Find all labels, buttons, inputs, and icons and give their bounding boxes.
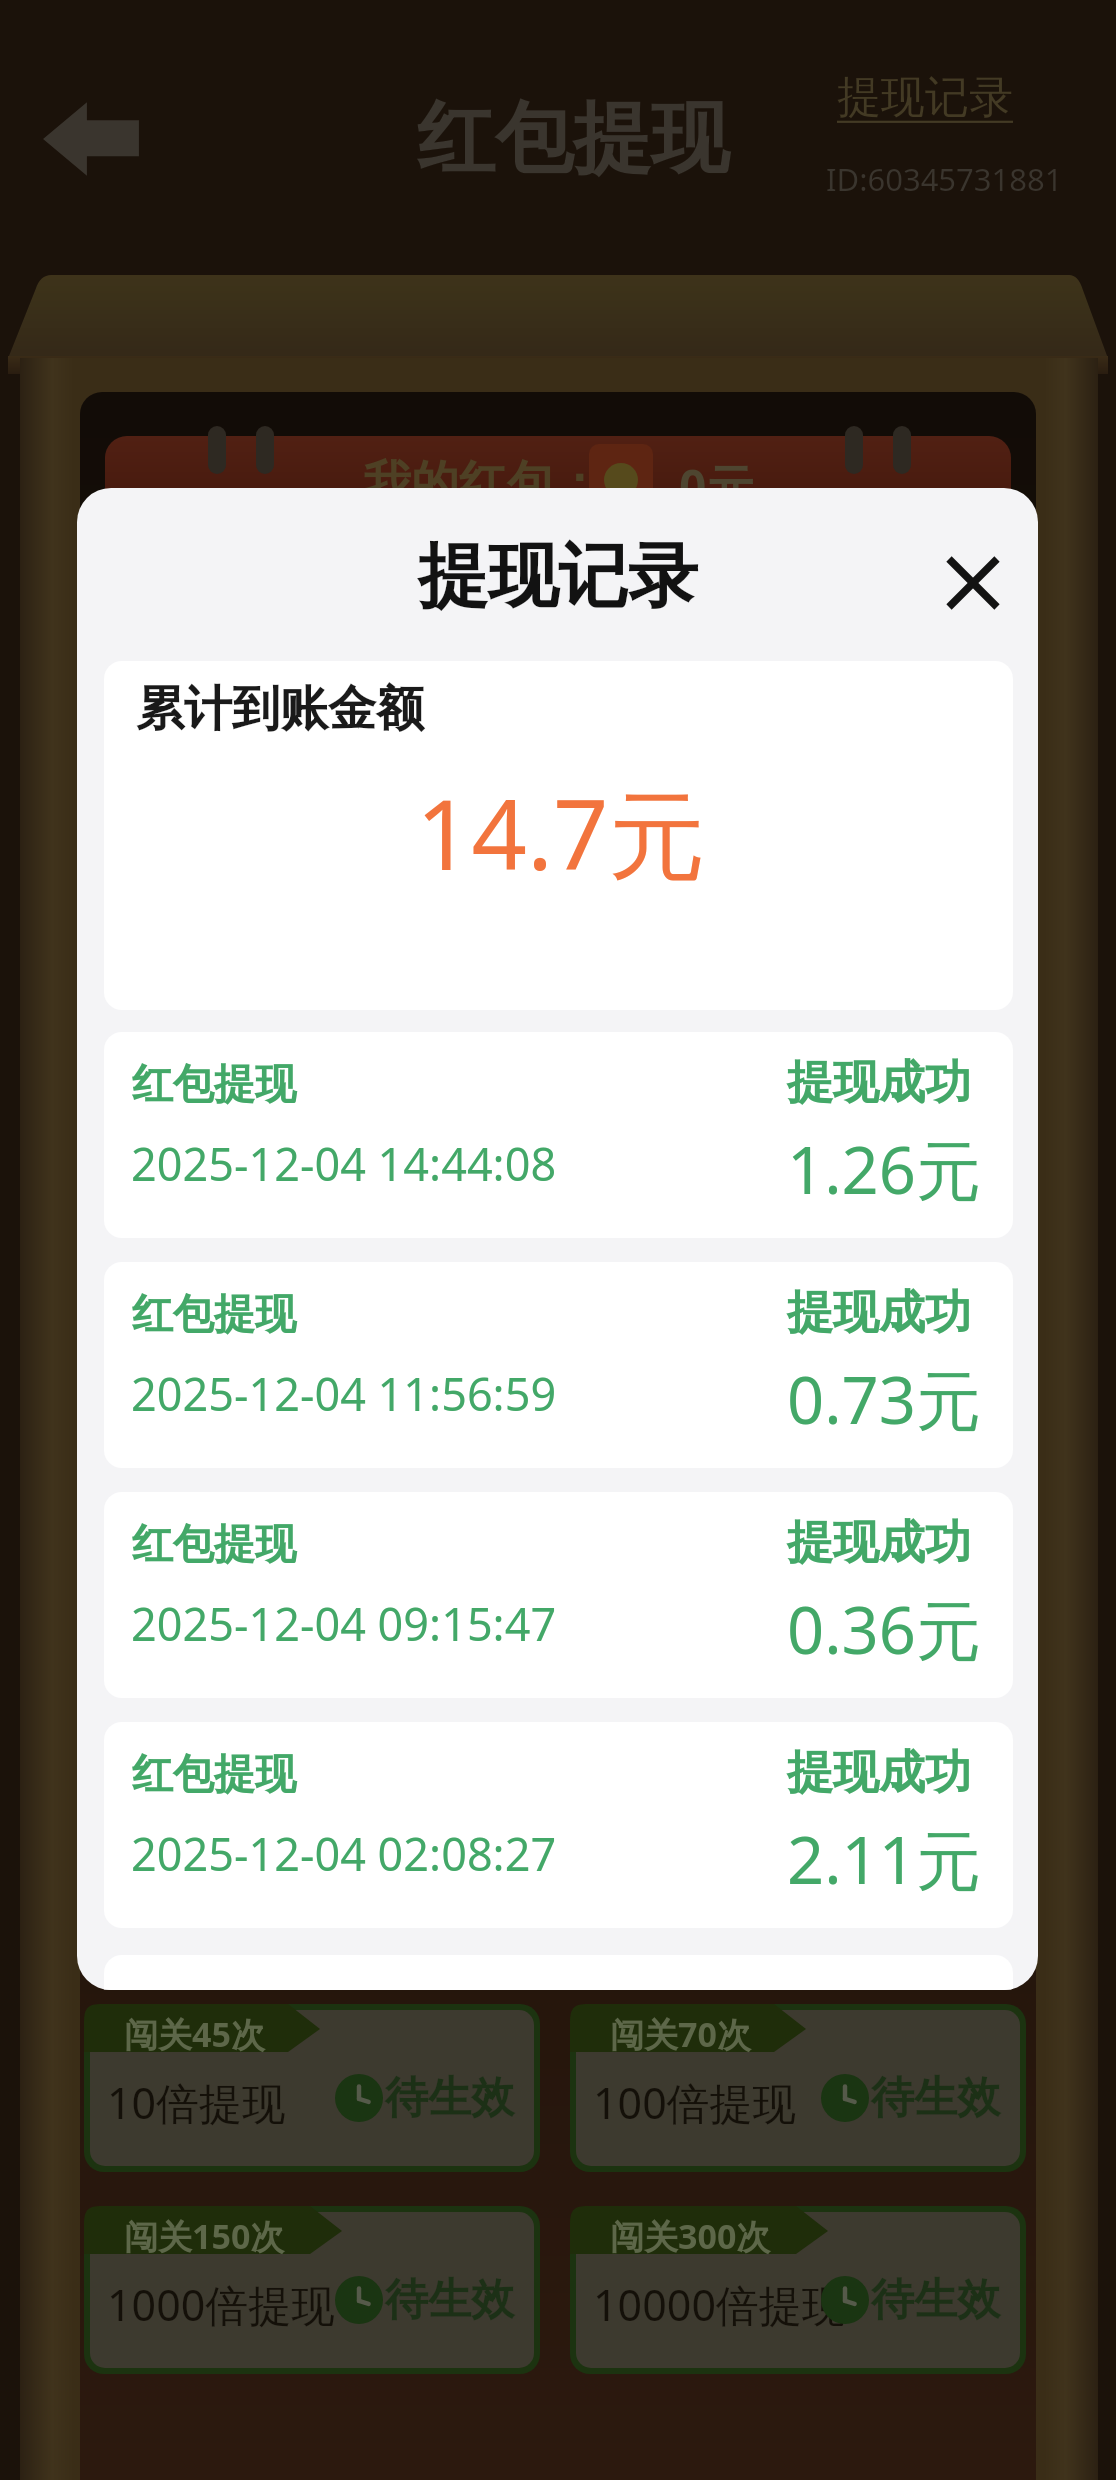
- staticText: 1000倍提现: [107, 2275, 335, 2334]
- staticText: 闯关150次: [124, 2213, 285, 2259]
- staticText: 待生效: [385, 2071, 514, 2125]
- staticText: 2025-12-04 11:56:59: [131, 1363, 557, 1424]
- staticText: 提现成功: [787, 1284, 971, 1342]
- staticText: 14.7元: [416, 766, 706, 898]
- staticText: 待生效: [871, 2071, 1000, 2125]
- button[interactable]: 红包提现: [104, 1492, 1013, 1698]
- staticText: 红包提现: [132, 1749, 296, 1801]
- staticText: 提现成功: [787, 1054, 971, 1112]
- staticText: 0.73元: [787, 1355, 981, 1444]
- staticText: 待生效: [871, 2273, 1000, 2327]
- button[interactable]: 闯关70次: [570, 2004, 1026, 2172]
- staticText: ID:60345731881: [826, 158, 1063, 200]
- staticText: 红包提现: [132, 1059, 296, 1111]
- staticText: 我的红包：: [363, 454, 603, 514]
- staticText: 1.26元: [787, 1125, 981, 1214]
- staticText: 2.11元: [787, 1815, 981, 1904]
- staticText: 2025-12-04 09:15:47: [131, 1593, 557, 1654]
- staticText: 提现记录: [418, 533, 698, 621]
- staticText: 0.36元: [787, 1585, 981, 1674]
- staticText: 待生效: [385, 2273, 514, 2327]
- staticText: 提现记录: [837, 70, 1013, 125]
- button[interactable]: 提现记录: [825, 62, 1025, 132]
- staticText: 10倍提现: [107, 2073, 286, 2132]
- button[interactable]: 闯关150次: [84, 2206, 540, 2374]
- button[interactable]: 闯关300次: [570, 2206, 1026, 2374]
- staticText: 提现成功: [787, 1514, 971, 1572]
- staticText: 红包提现: [417, 90, 729, 188]
- staticText: 闯关70次: [610, 2011, 751, 2057]
- staticText: 红包提现: [132, 1519, 296, 1571]
- staticText: 闯关300次: [610, 2213, 771, 2259]
- button[interactable]: Close: [935, 545, 1011, 621]
- button[interactable]: 红包提现: [104, 1262, 1013, 1468]
- staticText: 2025-12-04 14:44:08: [131, 1133, 557, 1194]
- staticText: 闯关45次: [124, 2011, 265, 2057]
- staticText: 0元: [679, 454, 755, 520]
- staticText: 红包提现: [132, 1289, 296, 1341]
- button[interactable]: 红包提现: [104, 1722, 1013, 1928]
- staticText: 2025-12-04 02:08:27: [131, 1823, 557, 1884]
- button[interactable]: 红包提现: [104, 1032, 1013, 1238]
- staticText: 累计到账金额: [136, 679, 424, 739]
- staticText: 10000倍提现: [593, 2275, 845, 2334]
- staticText: 100倍提现: [593, 2073, 796, 2132]
- button[interactable]: 闯关45次: [84, 2004, 540, 2172]
- staticText: 提现成功: [787, 1744, 971, 1802]
- button[interactable]: Back: [40, 100, 142, 178]
